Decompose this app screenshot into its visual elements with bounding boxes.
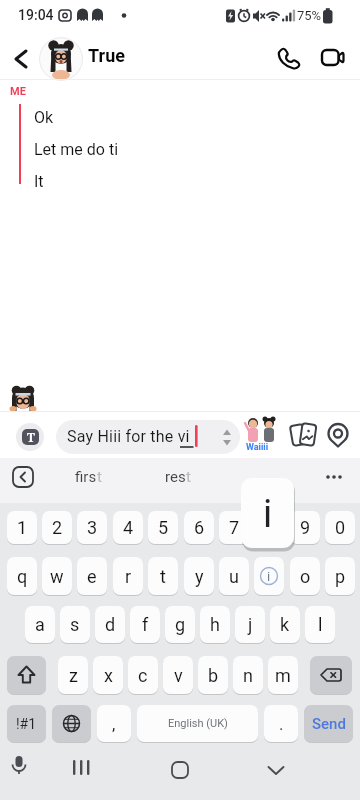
button[interactable]: i <box>254 557 284 595</box>
button[interactable]: 0 <box>325 511 355 544</box>
staticText: 2 <box>52 517 63 538</box>
button[interactable]: 8 <box>254 511 284 544</box>
button[interactable]: w <box>42 557 72 595</box>
button[interactable]: s <box>60 606 90 643</box>
button[interactable] <box>10 464 36 490</box>
staticText: h <box>210 614 220 635</box>
button[interactable] <box>317 42 347 72</box>
button[interactable]: t <box>148 557 178 595</box>
button[interactable]: 6 <box>184 511 214 544</box>
button[interactable]: e <box>77 557 107 595</box>
button[interactable] <box>272 42 302 72</box>
staticText: s <box>70 614 80 635</box>
button[interactable]: f <box>130 606 160 643</box>
button[interactable]: q <box>7 557 37 595</box>
button[interactable]: y <box>184 557 214 595</box>
button[interactable]: x <box>93 656 123 694</box>
button[interactable]: 3 <box>77 511 107 544</box>
staticText: 0 <box>335 517 346 538</box>
button[interactable]: b <box>198 656 228 694</box>
staticText: ME <box>10 85 26 98</box>
staticText: Waiiii <box>246 442 269 453</box>
button[interactable] <box>265 759 287 781</box>
staticText: 6 <box>194 517 205 538</box>
staticText: a <box>35 614 45 635</box>
staticText: 9 <box>300 517 311 538</box>
button[interactable]: a <box>25 606 55 643</box>
staticText: y <box>195 566 204 587</box>
button[interactable]: Waiiii <box>244 415 280 455</box>
staticText: Let me do ti <box>34 140 119 159</box>
staticText: 7 <box>229 517 240 538</box>
button[interactable]: Send <box>304 705 353 742</box>
staticText: It <box>34 172 44 191</box>
button[interactable] <box>169 759 191 781</box>
button[interactable] <box>52 705 91 742</box>
button[interactable]: m <box>268 656 298 694</box>
staticText: e <box>87 566 97 587</box>
button[interactable]: c <box>128 656 158 694</box>
button[interactable] <box>310 656 352 694</box>
button[interactable]: 4 <box>113 511 143 544</box>
staticText: v <box>174 665 183 686</box>
staticText: o <box>300 566 311 587</box>
button[interactable]: r <box>113 557 143 595</box>
button[interactable]: 2 <box>42 511 72 544</box>
button[interactable]: 1 <box>7 511 37 544</box>
button[interactable]: v <box>163 656 193 694</box>
button[interactable]: English (UK) <box>137 705 258 742</box>
button[interactable]: . <box>264 705 298 742</box>
button[interactable]: z <box>58 656 88 694</box>
button[interactable] <box>324 419 354 449</box>
staticText: res <box>165 468 186 486</box>
button[interactable]: l <box>305 606 335 643</box>
staticText: c <box>138 665 148 686</box>
button[interactable]: k <box>270 606 300 643</box>
button[interactable]: h <box>200 606 230 643</box>
button[interactable]: d <box>95 606 125 643</box>
staticText: z <box>69 665 78 686</box>
button[interactable]: o <box>290 557 320 595</box>
staticText: g <box>175 614 186 635</box>
button[interactable] <box>7 656 46 694</box>
button[interactable]: u <box>219 557 249 595</box>
button[interactable]: , <box>97 705 131 742</box>
staticText: t <box>186 468 191 486</box>
staticText: Say Hiii for the vi <box>67 427 190 446</box>
button[interactable]: firs <box>40 462 136 492</box>
staticText: 5 <box>158 517 169 538</box>
button[interactable]: 7 <box>219 511 249 544</box>
button[interactable] <box>288 419 318 449</box>
button[interactable]: 9 <box>290 511 320 544</box>
staticText: Ok <box>34 108 54 127</box>
staticText: t <box>160 566 166 587</box>
button[interactable] <box>56 420 240 454</box>
staticText: 4 <box>123 517 134 538</box>
button[interactable] <box>39 37 83 81</box>
staticText: English (UK) <box>168 717 228 730</box>
staticText: !#1 <box>16 716 37 732</box>
staticText: p <box>335 566 346 587</box>
staticText: w <box>50 566 64 587</box>
button[interactable] <box>6 44 36 74</box>
button[interactable]: g <box>165 606 195 643</box>
staticText: 1 <box>17 517 28 538</box>
staticText: 75% <box>297 8 322 23</box>
button[interactable]: 5 <box>148 511 178 544</box>
staticText: T <box>27 429 35 445</box>
button[interactable]: T <box>16 423 44 451</box>
button[interactable] <box>68 756 96 778</box>
button[interactable]: n <box>233 656 263 694</box>
button[interactable]: !#1 <box>7 705 46 742</box>
staticText: f <box>142 614 149 635</box>
staticText: x <box>104 665 113 686</box>
staticText: k <box>280 614 290 635</box>
button[interactable]: res <box>130 462 226 492</box>
button[interactable]: j <box>235 606 265 643</box>
staticText: , <box>112 714 116 734</box>
staticText: Send <box>312 715 346 733</box>
staticText: firs <box>75 468 97 486</box>
staticText: True <box>88 45 125 66</box>
button[interactable]: p <box>325 557 355 595</box>
button[interactable] <box>6 753 32 779</box>
